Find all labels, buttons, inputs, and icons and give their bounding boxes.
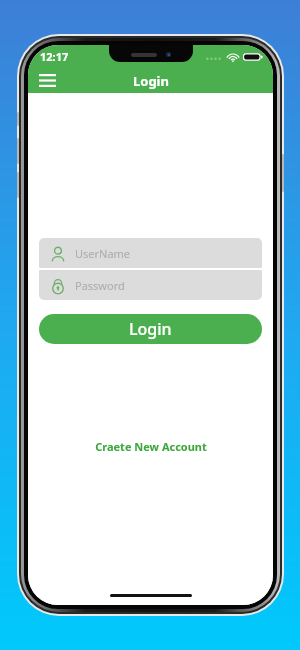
- staticText: 12:17: [40, 49, 69, 64]
- staticText: Craete New Account: [95, 439, 207, 454]
- staticText: Password: [75, 278, 125, 293]
- button[interactable]: Open navigation menu: [34, 68, 60, 93]
- button[interactable]: Password: [39, 270, 262, 300]
- staticText: Login: [129, 318, 172, 340]
- staticText: Login: [133, 72, 169, 90]
- button[interactable]: UserName: [39, 238, 262, 268]
- button[interactable]: Craete New Account: [39, 439, 262, 454]
- button[interactable]: Login: [39, 314, 262, 344]
- staticText: UserName: [75, 246, 131, 261]
